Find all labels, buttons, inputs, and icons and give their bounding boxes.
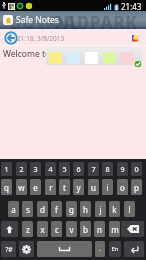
button[interactable]: j bbox=[95, 201, 106, 217]
button[interactable]: Enter bbox=[124, 241, 144, 257]
button[interactable]: y bbox=[73, 179, 84, 195]
button[interactable]: m bbox=[109, 221, 120, 237]
button[interactable]: ?# bbox=[1, 241, 16, 257]
staticText: a bbox=[11, 204, 16, 215]
button[interactable]: 5 bbox=[59, 162, 70, 176]
button[interactable]: 3 bbox=[30, 162, 41, 176]
button[interactable]: v bbox=[66, 221, 77, 237]
staticText: 2 bbox=[19, 164, 24, 174]
staticText: ?# bbox=[5, 245, 13, 254]
staticText: t bbox=[63, 182, 66, 193]
staticText: b bbox=[83, 224, 88, 235]
staticText: y bbox=[76, 182, 81, 193]
button[interactable]: c bbox=[51, 221, 62, 237]
button[interactable]: i bbox=[102, 179, 113, 195]
staticText: h bbox=[83, 204, 88, 215]
staticText: 3 bbox=[33, 164, 38, 174]
staticText: 21:43 bbox=[121, 1, 142, 12]
button[interactable]: 2 bbox=[16, 162, 27, 176]
button[interactable]: 8 bbox=[102, 162, 113, 176]
staticText: Welcome to bbox=[3, 48, 51, 60]
staticText: c bbox=[55, 224, 59, 235]
staticText: j bbox=[99, 204, 102, 215]
staticText: u bbox=[91, 182, 96, 193]
button[interactable]: w bbox=[16, 179, 27, 195]
button[interactable]: Shift bbox=[1, 221, 18, 237]
button[interactable]: 9 bbox=[117, 162, 128, 176]
staticText: x bbox=[40, 224, 45, 235]
staticText: e bbox=[33, 182, 38, 193]
staticText: Safe Notes bbox=[16, 14, 59, 26]
staticText: . bbox=[99, 244, 101, 254]
staticText: l bbox=[128, 204, 131, 215]
button[interactable]: l bbox=[124, 201, 135, 217]
staticText: En bbox=[111, 245, 119, 253]
button[interactable]: z bbox=[22, 221, 33, 237]
button[interactable]: g bbox=[66, 201, 77, 217]
staticText: n bbox=[97, 224, 102, 235]
button[interactable]: 0 bbox=[131, 162, 142, 176]
button[interactable]: u bbox=[88, 179, 99, 195]
button[interactable]: En bbox=[109, 241, 121, 257]
button[interactable]: q bbox=[1, 179, 12, 195]
staticText: 0 bbox=[134, 164, 139, 174]
button[interactable]: 7 bbox=[88, 162, 99, 176]
button[interactable]: o bbox=[117, 179, 128, 195]
staticText: 5 bbox=[62, 164, 67, 174]
staticText: o bbox=[120, 182, 125, 193]
button[interactable]: b bbox=[80, 221, 91, 237]
button[interactable]: n bbox=[94, 221, 105, 237]
button[interactable]: a bbox=[8, 201, 19, 217]
button[interactable]: Space bbox=[37, 241, 92, 257]
staticText: 7 bbox=[91, 164, 96, 174]
button[interactable]: Note colour bbox=[130, 33, 141, 44]
staticText: m bbox=[111, 224, 119, 235]
button[interactable]: 1 bbox=[1, 162, 12, 176]
button[interactable]: t bbox=[59, 179, 70, 195]
button[interactable]: Backspace bbox=[121, 221, 144, 237]
staticText: 1 bbox=[4, 164, 9, 174]
button[interactable]: p bbox=[131, 179, 142, 195]
button[interactable]: d bbox=[37, 201, 48, 217]
staticText: p bbox=[134, 182, 139, 193]
staticText: DOWNL bbox=[9, 11, 80, 29]
button[interactable]: k bbox=[109, 201, 120, 217]
button[interactable]: 6 bbox=[73, 162, 84, 176]
staticText: 8 bbox=[105, 164, 110, 174]
staticText: k bbox=[112, 204, 117, 215]
staticText: w bbox=[18, 182, 25, 193]
button[interactable]: 4 bbox=[45, 162, 56, 176]
button[interactable]: h bbox=[80, 201, 91, 217]
staticText: s bbox=[26, 204, 30, 215]
button[interactable]: Settings bbox=[19, 241, 34, 257]
staticText: v bbox=[69, 224, 74, 235]
staticText: g bbox=[69, 204, 74, 215]
button[interactable]: Confirm colour bbox=[134, 60, 142, 68]
staticText: OADPARK bbox=[50, 11, 138, 29]
staticText: 6 bbox=[76, 164, 81, 174]
button[interactable]: r bbox=[45, 179, 56, 195]
staticText: d bbox=[40, 204, 45, 215]
staticText: f bbox=[55, 204, 58, 215]
staticText: 9 bbox=[120, 164, 125, 174]
button[interactable]: f bbox=[51, 201, 62, 217]
staticText: i bbox=[106, 182, 109, 193]
button[interactable]: Back bbox=[4, 31, 18, 45]
staticText: 4 bbox=[48, 164, 53, 174]
button[interactable]: s bbox=[22, 201, 33, 217]
staticText: 21:18, 3/8/2013 bbox=[17, 34, 65, 43]
button[interactable]: x bbox=[37, 221, 48, 237]
staticText: q bbox=[4, 182, 9, 193]
staticText: r bbox=[49, 182, 53, 193]
button[interactable]: . bbox=[95, 241, 105, 257]
button[interactable]: e bbox=[30, 179, 41, 195]
staticText: z bbox=[26, 224, 30, 235]
